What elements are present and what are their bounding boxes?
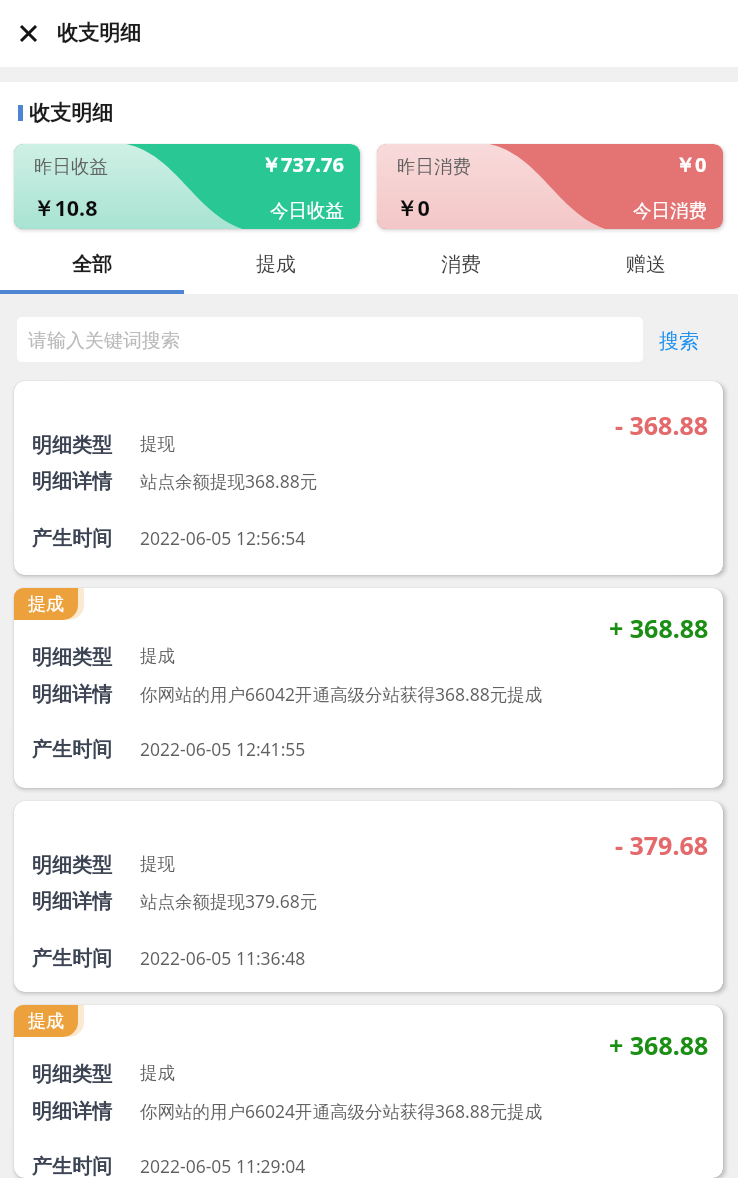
staticText: 明细类型: [32, 853, 112, 878]
staticText: 提成: [28, 1010, 64, 1033]
staticText: 消费: [441, 252, 481, 277]
button[interactable]: 消费: [368, 245, 553, 294]
staticText: 你网站的用户66042开通高级分站获得368.88元提成: [140, 682, 543, 706]
button[interactable]: - 368.88: [14, 381, 723, 575]
staticText: 提现: [140, 433, 175, 455]
button[interactable]: 全部: [0, 245, 184, 294]
staticText: 收支明细: [57, 20, 141, 46]
staticText: - 379.68: [615, 828, 709, 862]
button[interactable]: 提成: [184, 245, 368, 294]
staticText: 明细详情: [32, 1099, 112, 1124]
staticText: 明细类型: [32, 1062, 112, 1087]
staticText: 站点余额提现379.68元: [140, 889, 318, 913]
staticText: 提成: [140, 1062, 175, 1084]
staticText: ￥0: [675, 151, 707, 178]
staticText: 你网站的用户66024开通高级分站获得368.88元提成: [140, 1099, 543, 1123]
staticText: 提成: [140, 645, 175, 667]
staticText: 提现: [140, 853, 175, 875]
staticText: ￥10.8: [33, 193, 98, 222]
button[interactable]: 昨日收益: [14, 144, 360, 229]
staticText: 明细详情: [32, 469, 112, 494]
button[interactable]: + 368.88: [14, 588, 723, 788]
staticText: 产生时间: [32, 526, 112, 551]
staticText: 请输入关键词搜索: [28, 329, 180, 353]
staticText: 产生时间: [32, 946, 112, 971]
button[interactable]: 昨日消费: [377, 144, 723, 229]
staticText: 2022-06-05 11:36:48: [140, 946, 306, 970]
staticText: 全部: [72, 252, 112, 277]
staticText: 产生时间: [32, 737, 112, 762]
staticText: 今日收益: [270, 199, 344, 222]
staticText: 赠送: [626, 252, 666, 277]
staticText: 收支明细: [29, 100, 113, 126]
button[interactable]: Close: [9, 14, 47, 52]
staticText: 2022-06-05 12:41:55: [140, 737, 306, 761]
staticText: 今日消费: [633, 199, 707, 222]
staticText: 昨日消费: [397, 155, 471, 178]
staticText: 站点余额提现368.88元: [140, 469, 318, 493]
staticText: - 368.88: [615, 408, 709, 442]
button[interactable]: - 379.68: [14, 801, 723, 992]
button[interactable]: + 368.88: [14, 1005, 723, 1178]
staticText: 明细类型: [32, 645, 112, 670]
staticText: 明细类型: [32, 433, 112, 458]
staticText: 提成: [256, 252, 296, 277]
button[interactable]: 请输入关键词搜索: [17, 317, 643, 362]
staticText: ￥0: [396, 193, 430, 222]
staticText: 2022-06-05 12:56:54: [140, 526, 306, 550]
staticText: 提成: [28, 593, 64, 616]
staticText: + 368.88: [609, 611, 709, 645]
staticText: 明细详情: [32, 682, 112, 707]
button[interactable]: 搜索: [659, 317, 699, 362]
staticText: 明细详情: [32, 889, 112, 914]
staticText: 昨日收益: [34, 155, 108, 178]
staticText: 2022-06-05 11:29:04: [140, 1154, 306, 1178]
staticText: ￥737.76: [261, 151, 344, 178]
staticText: + 368.88: [609, 1028, 709, 1062]
button[interactable]: 赠送: [553, 245, 738, 294]
staticText: 搜索: [659, 329, 699, 354]
staticText: 产生时间: [32, 1154, 112, 1178]
